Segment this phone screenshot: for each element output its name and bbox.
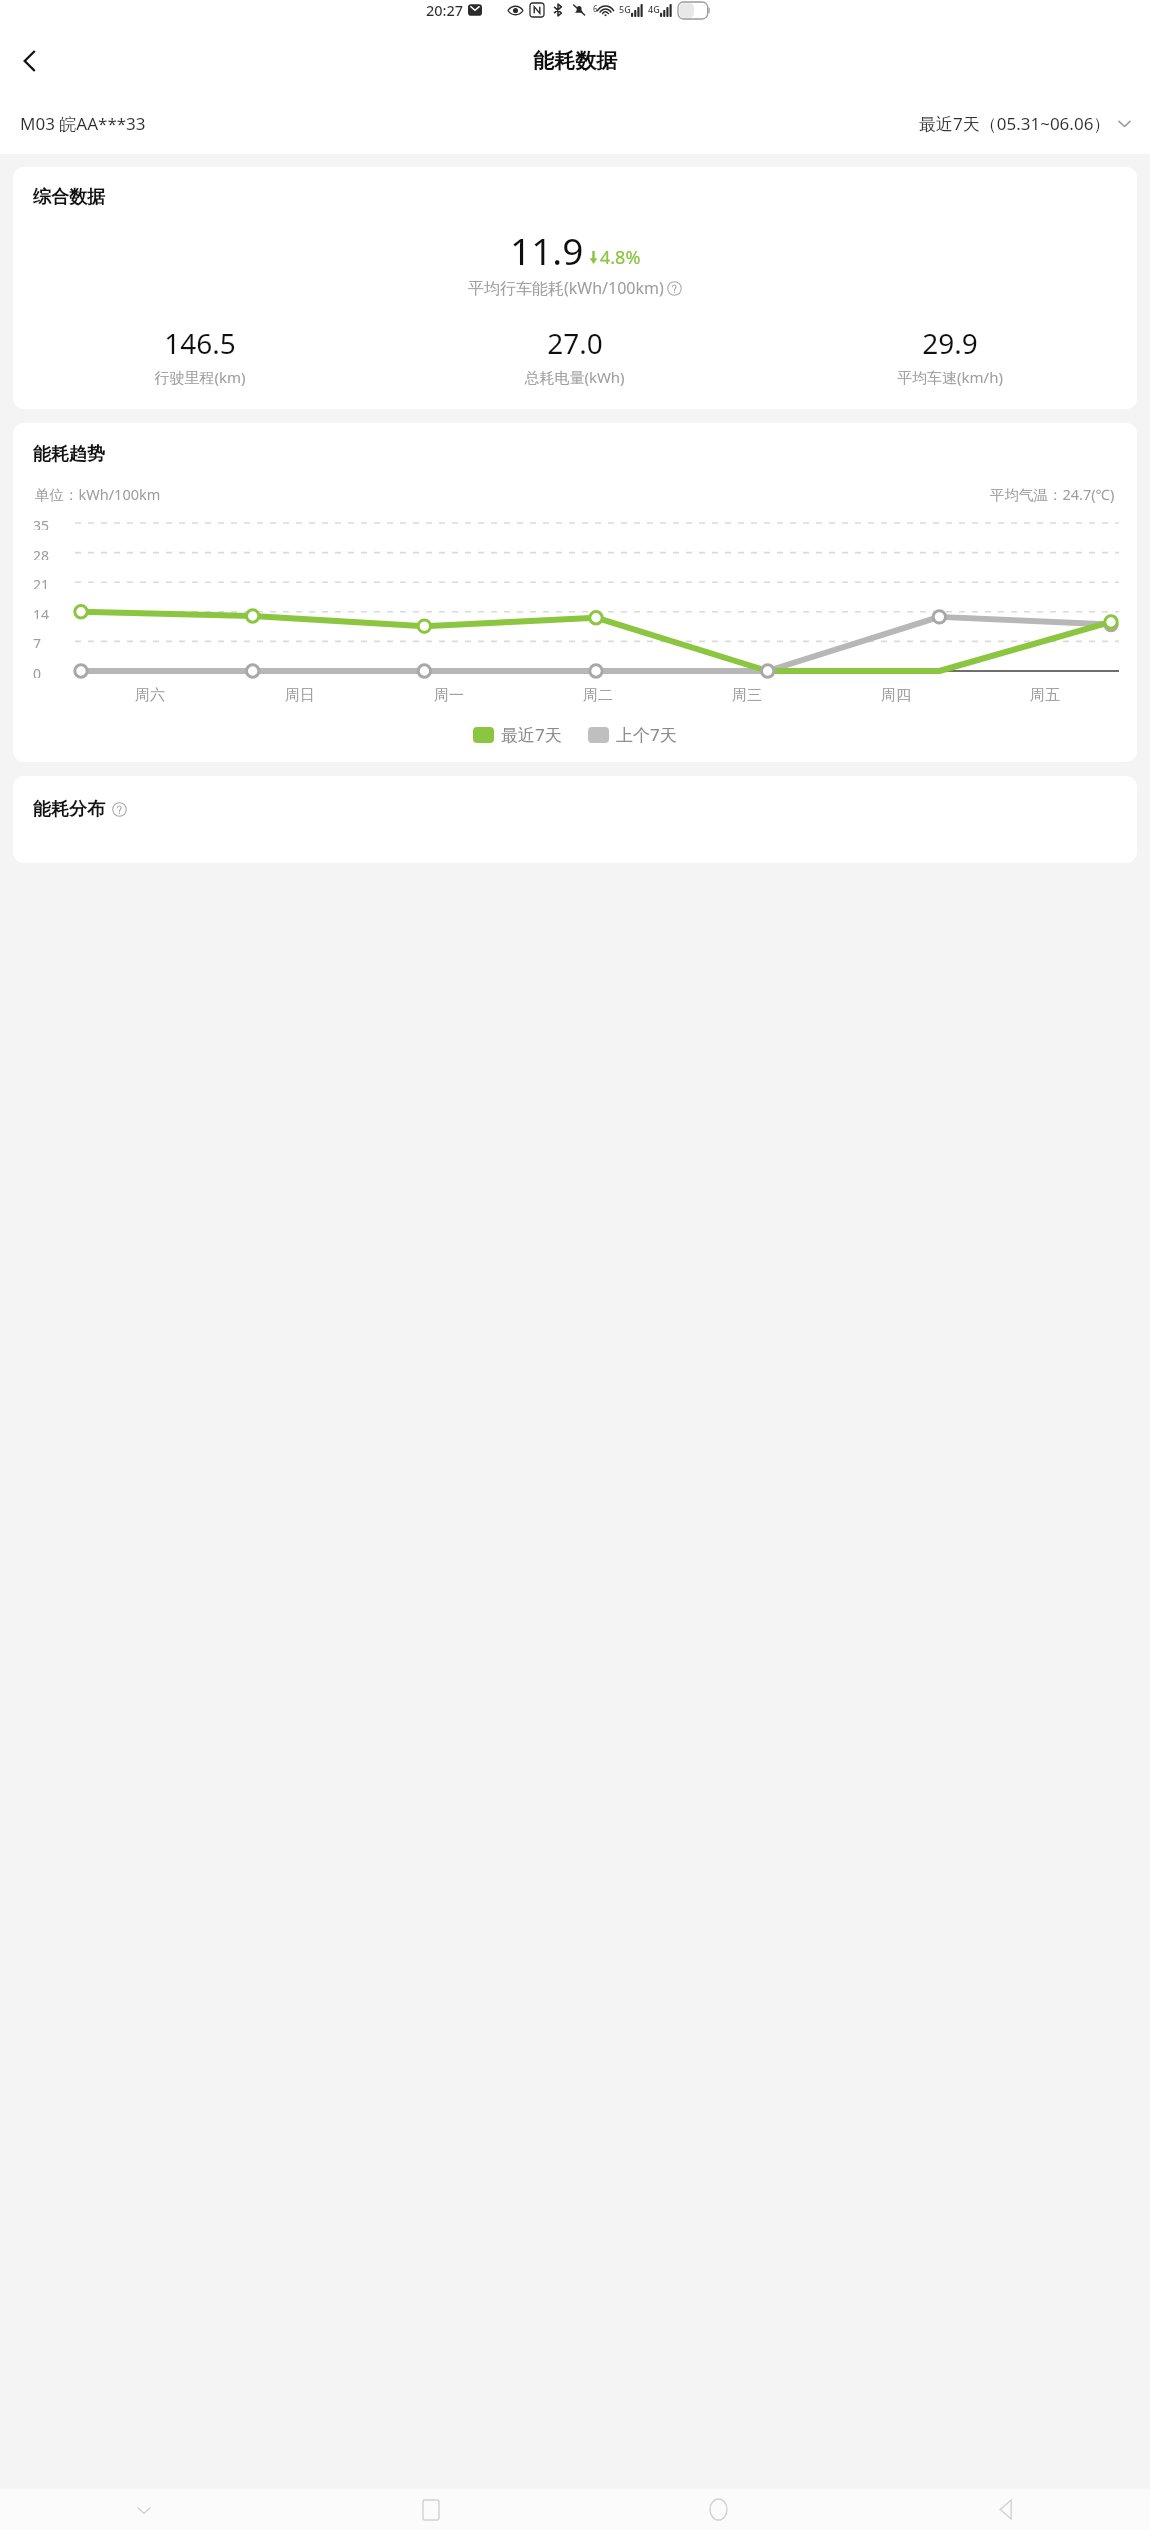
staticText: 周一 [434, 686, 464, 705]
staticText: 最近7天 [501, 723, 562, 746]
staticText: 21 [33, 575, 50, 589]
button[interactable]: Recents [287, 2489, 574, 2530]
staticText: 14 [33, 605, 50, 619]
staticText: 0 [33, 664, 42, 678]
staticText: 29.9 [922, 324, 978, 362]
staticText: 平均气温：24.7(℃) [990, 484, 1115, 504]
staticText: 5G [619, 3, 631, 15]
button[interactable]: 最近7天 [473, 723, 562, 746]
staticText: 周二 [583, 686, 613, 705]
button[interactable]: 综合数据 [13, 167, 1137, 409]
staticText: 周三 [732, 686, 762, 705]
staticText: 27.0 [547, 324, 603, 362]
staticText: 周六 [135, 686, 165, 705]
staticText: 周五 [1030, 686, 1060, 705]
button[interactable]: Home [574, 2489, 862, 2530]
staticText: 周四 [881, 686, 911, 705]
button[interactable]: 29.9 [762, 324, 1137, 387]
staticText: 周日 [285, 686, 315, 705]
button[interactable]: M03 皖AA***33 [20, 112, 146, 135]
staticText: 最近7天（05.31~06.06） [919, 112, 1111, 135]
staticText: 综合数据 [33, 186, 105, 209]
staticText: 总耗电量(kWh) [524, 367, 625, 387]
staticText: 平均行车能耗(kWh/100km) [468, 277, 664, 299]
staticText: 行驶里程(km) [154, 367, 246, 387]
button[interactable]: 上个7天 [588, 723, 677, 746]
staticText: 能耗趋势 [33, 443, 105, 466]
button[interactable]: 146.5 [13, 324, 387, 387]
staticText: 146.5 [164, 324, 236, 362]
button[interactable]: 能耗分布 [13, 776, 1137, 863]
staticText: 35 [33, 516, 50, 530]
staticText: 20:27 [426, 0, 464, 20]
staticText: 4.8% [600, 245, 641, 270]
staticText: M03 皖AA***33 [20, 112, 146, 135]
staticText: 平均车速(km/h) [897, 367, 1003, 387]
button[interactable]: 27.0 [387, 324, 762, 387]
staticText: 能耗数据 [533, 48, 617, 74]
staticText: 28 [33, 546, 50, 560]
staticText: 7 [33, 634, 42, 648]
button[interactable]: 最近7天（05.31~06.06） [919, 112, 1132, 135]
staticText: 11.9 [510, 225, 584, 275]
staticText: 上个7天 [616, 723, 677, 746]
staticText: 单位：kWh/100km [35, 484, 161, 504]
staticText: 能耗分布 [33, 798, 105, 821]
staticText: 6 [593, 3, 598, 14]
button[interactable]: 能耗趋势 [13, 423, 1137, 762]
staticText: 4G [648, 3, 660, 15]
button[interactable]: Back [6, 37, 54, 85]
